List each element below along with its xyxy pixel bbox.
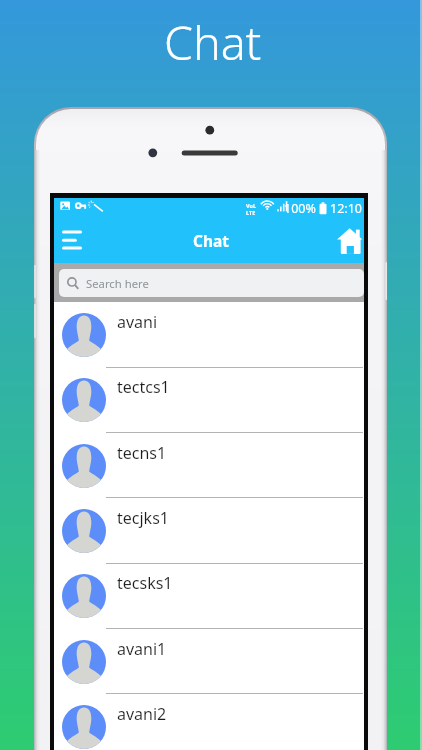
button[interactable]: tecjks1 (54, 498, 364, 563)
staticText: LTE (246, 209, 256, 216)
button[interactable]: Search here (59, 269, 364, 297)
button[interactable]: avani (54, 302, 364, 367)
staticText: VoL (246, 202, 256, 209)
staticText: Chat (164, 10, 262, 73)
staticText: tecjks1 (117, 507, 169, 529)
staticText: avani1 (117, 638, 167, 660)
button[interactable]: Menu (54, 223, 90, 259)
button[interactable]: Home (328, 223, 364, 259)
button[interactable]: tecsks1 (54, 563, 364, 628)
staticText: tecsks1 (117, 572, 173, 594)
button[interactable]: avani1 (54, 629, 364, 694)
staticText: tectcs1 (117, 376, 170, 398)
staticText: Search here (86, 276, 149, 291)
button[interactable]: avani2 (54, 694, 364, 750)
staticText: avani2 (117, 703, 167, 725)
staticText: avani (117, 311, 158, 333)
staticText: Chat (193, 230, 230, 251)
button[interactable]: tecns1 (54, 433, 364, 498)
staticText: 100% (284, 200, 316, 217)
staticText: tecns1 (117, 442, 167, 464)
staticText: 12:10 (330, 200, 362, 217)
button[interactable]: tectcs1 (54, 367, 364, 432)
